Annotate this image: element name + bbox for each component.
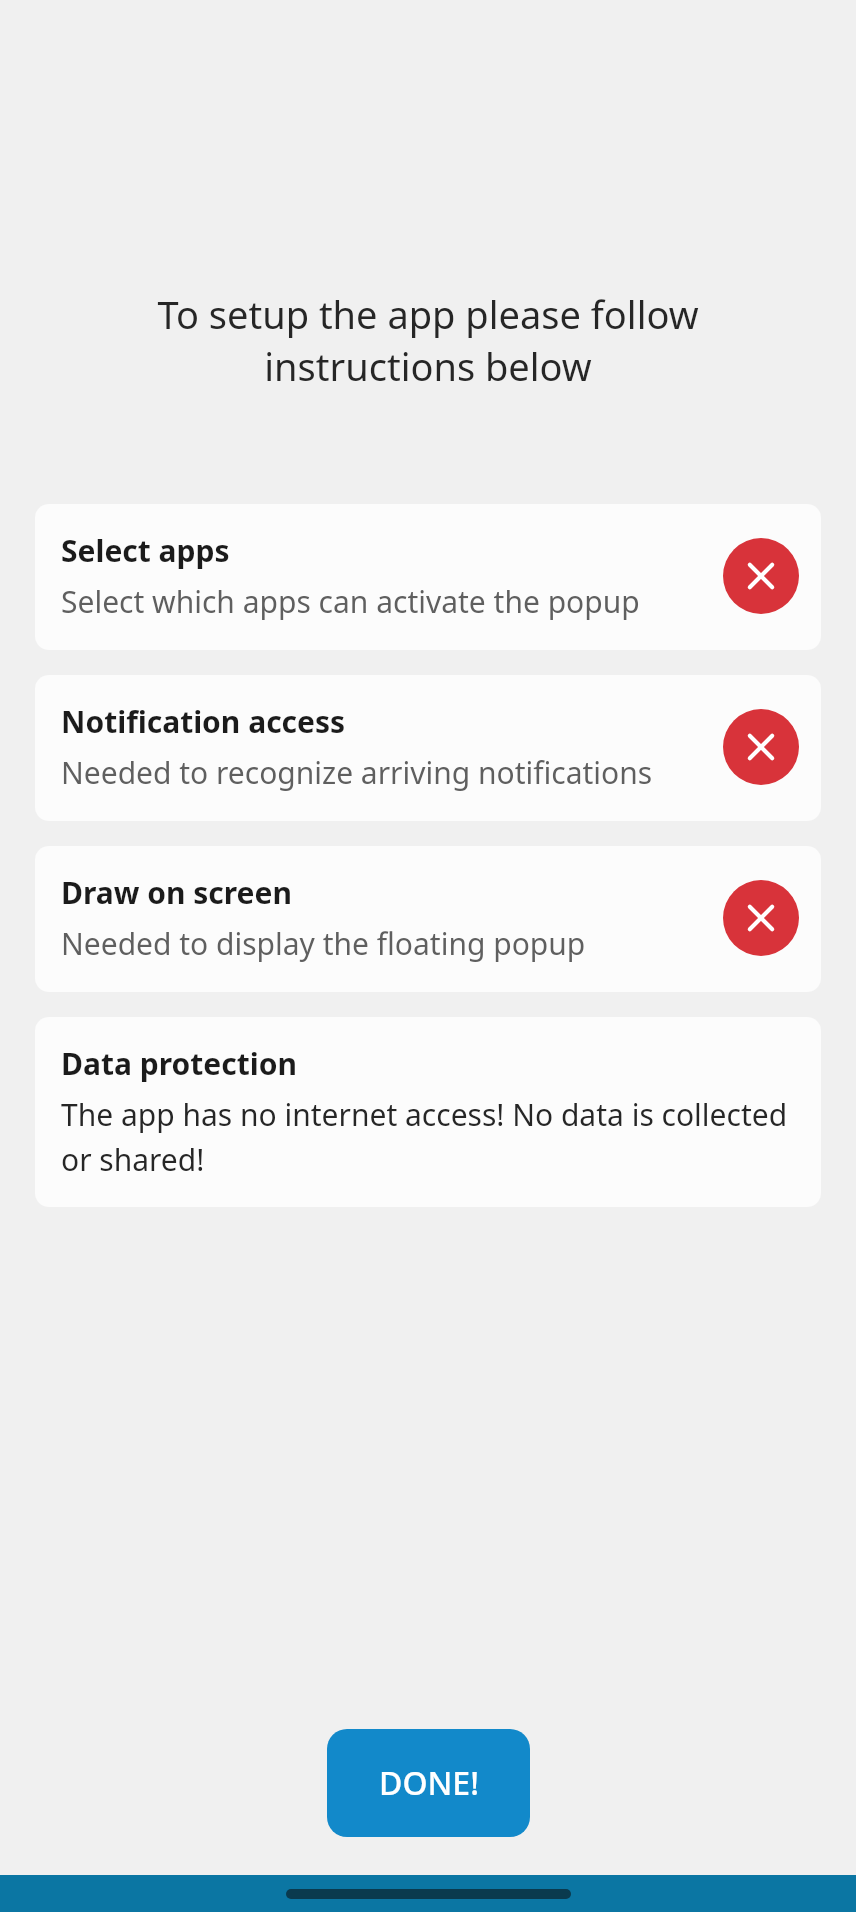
staticText: To setup the app please follow instructi… bbox=[120, 288, 736, 392]
staticText: Select apps bbox=[61, 530, 230, 571]
button[interactable]: Select apps bbox=[35, 504, 821, 650]
button[interactable]: Permission not granted bbox=[723, 709, 799, 785]
staticText: Draw on screen bbox=[61, 872, 292, 913]
button[interactable]: DONE! bbox=[327, 1729, 530, 1837]
staticText: Needed to recognize arriving notificatio… bbox=[61, 752, 653, 793]
staticText: Select which apps can activate the popup bbox=[61, 581, 640, 622]
button[interactable]: Permission not granted bbox=[723, 880, 799, 956]
staticText: The app has no internet access! No data … bbox=[61, 1094, 799, 1179]
staticText: Data protection bbox=[61, 1043, 297, 1084]
button[interactable]: Permission not granted bbox=[723, 538, 799, 614]
staticText: DONE! bbox=[379, 1761, 479, 1805]
button[interactable]: Data protection bbox=[35, 1017, 821, 1207]
button[interactable]: Notification access bbox=[35, 675, 821, 821]
button[interactable]: Draw on screen bbox=[35, 846, 821, 992]
staticText: Notification access bbox=[61, 701, 346, 742]
staticText: Needed to display the floating popup bbox=[61, 923, 586, 964]
